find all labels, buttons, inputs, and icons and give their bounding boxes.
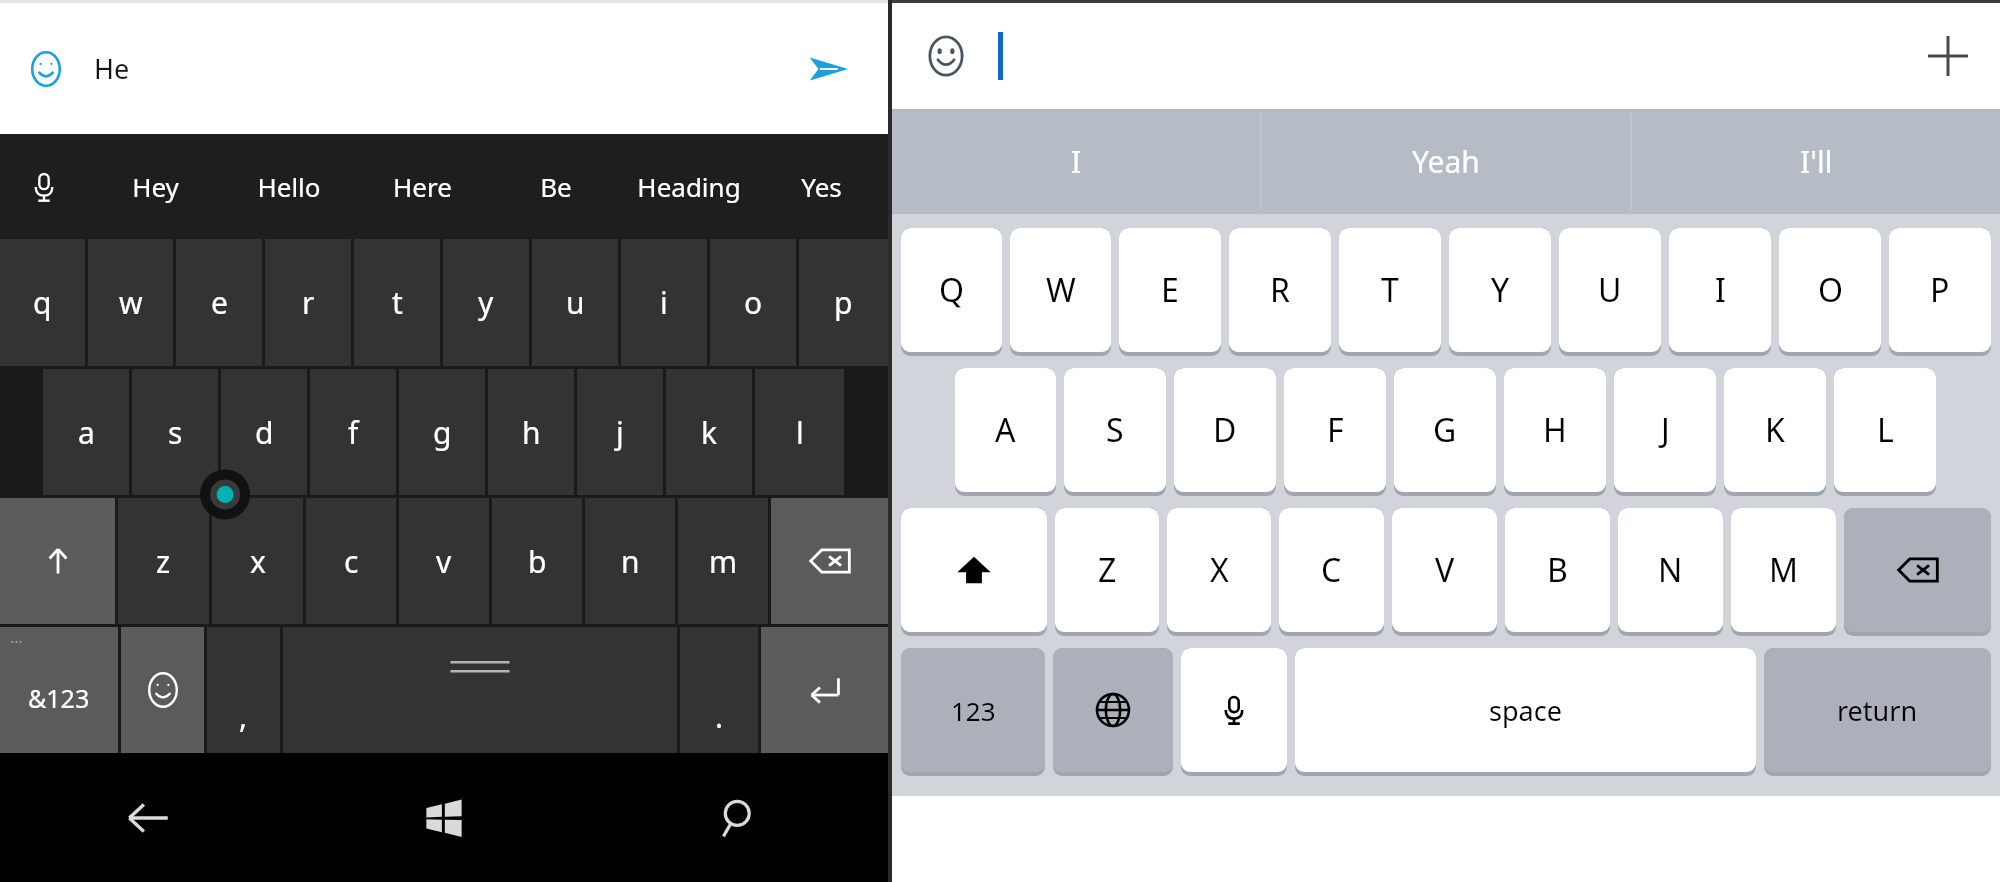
button[interactable]: Emoji (24, 47, 68, 91)
button[interactable]: X (1167, 508, 1271, 632)
button[interactable]: . (680, 627, 758, 753)
button[interactable]: R (1229, 228, 1331, 352)
button[interactable]: T (1339, 228, 1441, 352)
button[interactable]: J (1614, 368, 1716, 492)
button[interactable]: d (221, 369, 307, 495)
staticText: Here (393, 169, 452, 204)
button[interactable]: Voice input (0, 134, 88, 239)
button[interactable]: Back (0, 753, 296, 882)
button[interactable]: w (88, 239, 173, 366)
button[interactable]: Y (1449, 228, 1551, 352)
staticText: O (1818, 268, 1843, 312)
button[interactable]: i (621, 239, 707, 366)
button[interactable]: t (354, 239, 440, 366)
button[interactable]: Yes (755, 134, 888, 239)
button[interactable]: U (1559, 228, 1661, 352)
button[interactable]: v (399, 498, 489, 624)
staticText: Z (1098, 548, 1117, 592)
button[interactable]: Backspace (771, 498, 888, 624)
button[interactable]: Search (592, 753, 888, 882)
button[interactable]: j (577, 369, 663, 495)
button[interactable]: Here (356, 134, 489, 239)
button[interactable]: F (1284, 368, 1386, 492)
button[interactable]: V (1392, 508, 1497, 632)
button[interactable]: I (892, 109, 1260, 214)
button[interactable]: G (1394, 368, 1496, 492)
button[interactable]: K (1724, 368, 1826, 492)
button[interactable]: m (678, 498, 768, 624)
button[interactable]: Dictate (1181, 648, 1287, 772)
button[interactable]: c (306, 498, 396, 624)
button[interactable]: n (585, 498, 675, 624)
button[interactable]: Be (489, 134, 622, 239)
staticText: w (119, 282, 143, 323)
button[interactable]: I (1669, 228, 1771, 352)
button[interactable]: Add (1920, 28, 1976, 84)
button[interactable]: Next keyboard (1053, 648, 1173, 772)
button[interactable]: Emoji (920, 30, 972, 82)
button[interactable]: W (1010, 228, 1111, 352)
button[interactable]: Send (802, 43, 854, 95)
button[interactable]: Hello (222, 134, 356, 239)
button[interactable]: u (532, 239, 618, 366)
button[interactable]: return (1764, 648, 1991, 772)
staticText: f (348, 412, 359, 453)
button[interactable]: a (43, 369, 129, 495)
button[interactable]: l (755, 369, 844, 495)
button[interactable]: h (488, 369, 574, 495)
button[interactable]: g (399, 369, 485, 495)
button[interactable]: Hey (88, 134, 222, 239)
staticText: p (834, 282, 853, 323)
button[interactable]: N (1618, 508, 1723, 632)
button[interactable]: q (0, 239, 85, 366)
button[interactable]: b (492, 498, 582, 624)
staticText: q (33, 282, 52, 323)
button[interactable]: Emoji (121, 627, 204, 753)
staticText: B (1547, 548, 1568, 592)
button[interactable]: E (1119, 228, 1221, 352)
button[interactable]: Backspace (1844, 508, 1991, 632)
button[interactable]: M (1731, 508, 1836, 632)
button[interactable]: o (710, 239, 796, 366)
staticText: F (1327, 408, 1344, 452)
button[interactable]: r (265, 239, 351, 366)
button[interactable]: Shift (0, 498, 115, 624)
button[interactable]: Space (283, 627, 677, 753)
button[interactable]: p (799, 239, 888, 366)
button[interactable]: k (666, 369, 752, 495)
button[interactable]: x (212, 498, 303, 624)
button[interactable]: e (176, 239, 262, 366)
button[interactable]: H (1504, 368, 1606, 492)
button[interactable]: 123 (901, 648, 1045, 772)
button[interactable]: S (1064, 368, 1166, 492)
button[interactable]: Yeah (1262, 109, 1630, 214)
staticText: X (1210, 548, 1229, 592)
button[interactable]: space (1295, 648, 1756, 772)
button[interactable]: f (310, 369, 396, 495)
staticText: J (1661, 408, 1670, 452)
button[interactable]: Z (1055, 508, 1159, 632)
staticText: y (478, 282, 494, 323)
button[interactable]: O (1779, 228, 1881, 352)
button[interactable]: Enter (761, 627, 888, 753)
staticText: t (392, 282, 403, 323)
button[interactable]: A (955, 368, 1056, 492)
button[interactable]: L (1834, 368, 1936, 492)
button[interactable]: Q (901, 228, 1002, 352)
button[interactable]: B (1505, 508, 1610, 632)
staticText: Yes (801, 169, 842, 204)
button[interactable]: ··· (0, 627, 118, 753)
staticText: o (744, 282, 763, 323)
button[interactable]: , (207, 627, 280, 753)
button[interactable]: Heading (622, 134, 755, 239)
button[interactable]: s (132, 369, 218, 495)
button[interactable]: I'll (1632, 109, 2000, 214)
button[interactable]: P (1889, 228, 1991, 352)
staticText: S (1106, 408, 1124, 452)
button[interactable]: Start (296, 753, 592, 882)
button[interactable]: z (118, 498, 209, 624)
button[interactable]: D (1174, 368, 1276, 492)
button[interactable]: Shift (901, 508, 1047, 632)
button[interactable]: y (443, 239, 529, 366)
button[interactable]: C (1279, 508, 1384, 632)
